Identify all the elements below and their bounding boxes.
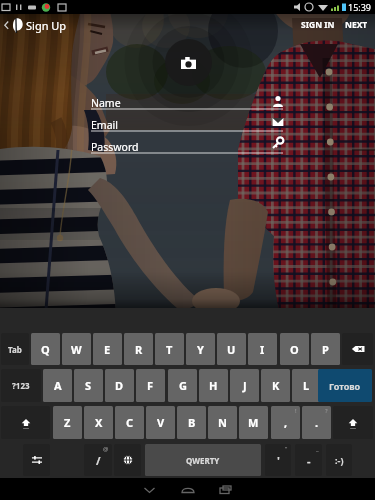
button[interactable]: D <box>105 369 134 402</box>
other: globe <box>119 451 137 469</box>
staticText: X <box>95 415 103 430</box>
button[interactable]: C <box>115 406 144 439</box>
staticText: R <box>135 342 143 357</box>
staticText: Sign Up <box>26 18 67 33</box>
button[interactable]: V <box>146 406 175 439</box>
staticText: P <box>322 342 329 357</box>
button[interactable]: / <box>84 444 112 476</box>
other: backspace <box>349 340 367 358</box>
button[interactable]: O <box>280 333 309 365</box>
staticText: ?123 <box>12 380 30 391</box>
button[interactable]: F <box>136 369 165 402</box>
staticText: Y <box>197 342 204 357</box>
button[interactable]: Name <box>0 96 375 117</box>
button[interactable]: Recent apps <box>215 478 375 500</box>
button[interactable]: I <box>248 333 277 365</box>
staticText: Email <box>91 118 118 132</box>
button[interactable]: G <box>168 369 197 402</box>
button[interactable]: :-) <box>326 444 352 476</box>
button[interactable]: Password <box>0 140 375 161</box>
button[interactable]: R <box>124 333 153 365</box>
staticText: ? <box>325 407 328 415</box>
button[interactable]: backspace <box>342 333 373 365</box>
button[interactable]: Back <box>139 478 375 500</box>
staticText: / <box>96 453 101 468</box>
staticText: S <box>85 378 92 393</box>
other: Back <box>2 18 11 32</box>
button[interactable]: E <box>93 333 122 365</box>
staticText: U <box>227 342 236 357</box>
button[interactable]: Y <box>186 333 215 365</box>
button[interactable]: Home <box>177 478 375 500</box>
other: shift <box>344 414 362 432</box>
staticText: - <box>307 453 311 468</box>
button[interactable]: Готово <box>318 369 372 402</box>
button[interactable]: . <box>302 406 331 439</box>
button[interactable]: U <box>217 333 246 365</box>
staticText: B <box>188 415 196 430</box>
button[interactable]: settings <box>23 444 50 476</box>
staticText: " <box>285 445 288 453</box>
button[interactable]: A <box>43 369 72 402</box>
staticText: ' <box>277 453 280 468</box>
staticText: SIGN IN <box>301 19 335 31</box>
button[interactable]: QWERTY <box>145 444 261 476</box>
button[interactable]: W <box>62 333 91 365</box>
button[interactable]: M <box>239 406 268 439</box>
button[interactable]: N <box>208 406 237 439</box>
staticText: C <box>126 415 134 430</box>
staticText: Z <box>64 415 71 430</box>
staticText: QWERTY <box>186 455 220 466</box>
staticText: @ <box>103 445 109 453</box>
button[interactable]: NEXT <box>342 17 371 33</box>
staticText: . <box>315 415 319 430</box>
button[interactable]: L <box>292 369 321 402</box>
other: settings <box>28 451 46 469</box>
button[interactable]: - <box>295 444 322 476</box>
button[interactable]: SIGN IN <box>298 17 338 33</box>
staticText: A <box>54 378 62 393</box>
staticText: _ <box>316 445 319 453</box>
staticText: E <box>104 342 111 357</box>
button[interactable]: , <box>271 406 300 439</box>
staticText: Q <box>41 342 50 357</box>
button[interactable]: P <box>311 333 340 365</box>
staticText: V <box>157 415 165 430</box>
staticText: N <box>218 415 227 430</box>
button[interactable]: Take photo <box>165 39 212 86</box>
staticText: J <box>243 378 247 393</box>
staticText: W <box>71 342 82 357</box>
button[interactable]: globe <box>114 444 141 476</box>
staticText: NEXT <box>345 19 368 31</box>
staticText: F <box>147 378 154 393</box>
staticText: Password <box>91 140 139 154</box>
button[interactable]: Q <box>31 333 60 365</box>
staticText: 15:39 <box>348 1 372 13</box>
button[interactable]: shift <box>333 406 373 439</box>
staticText: T <box>166 342 173 357</box>
staticText: G <box>179 378 187 393</box>
button[interactable]: T <box>155 333 184 365</box>
staticText: O <box>290 342 299 357</box>
staticText: , <box>284 415 288 430</box>
button[interactable]: S <box>74 369 103 402</box>
button[interactable]: ' <box>265 444 291 476</box>
button[interactable]: H <box>199 369 228 402</box>
staticText: ! <box>295 407 297 415</box>
staticText: K <box>272 378 280 393</box>
staticText: D <box>115 378 124 393</box>
button[interactable]: ?123 <box>1 369 41 402</box>
button[interactable]: K <box>261 369 290 402</box>
staticText: M <box>248 415 259 430</box>
button[interactable]: Tab <box>1 333 29 365</box>
button[interactable]: Z <box>53 406 82 439</box>
staticText: L <box>303 378 310 393</box>
staticText: H <box>209 378 218 393</box>
button[interactable]: J <box>230 369 259 402</box>
button[interactable]: Back <box>0 17 67 33</box>
staticText: Name <box>91 96 121 110</box>
button[interactable]: Email <box>0 118 375 139</box>
button[interactable]: B <box>177 406 206 439</box>
button[interactable]: X <box>84 406 113 439</box>
button[interactable]: shift <box>1 406 50 439</box>
